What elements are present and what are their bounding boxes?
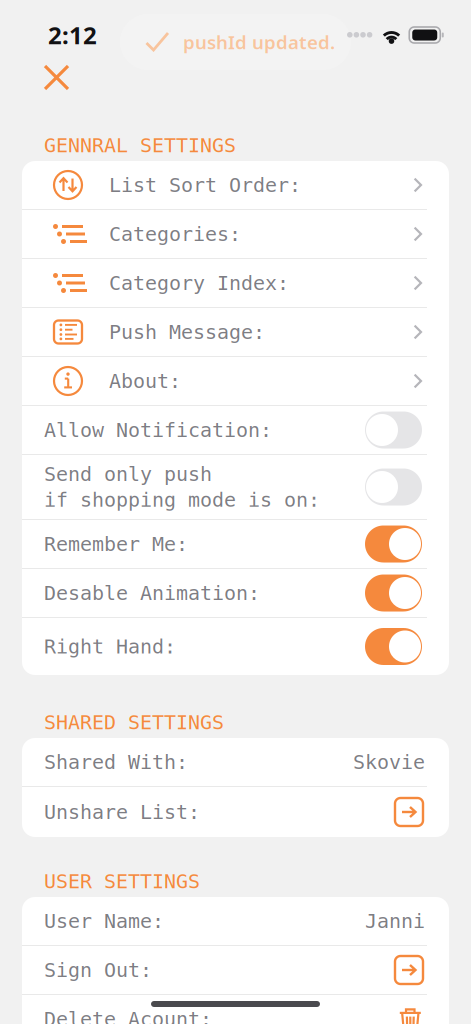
staticText: Allow Notification: [44, 419, 272, 441]
button[interactable]: Disabled [365, 411, 422, 448]
staticText: User Name: [44, 910, 164, 932]
staticText: List Sort Order: [109, 174, 301, 196]
staticText: Delete Acount: [44, 1008, 212, 1024]
staticText: Push Message: [109, 321, 265, 343]
staticText: About: [109, 370, 181, 392]
button[interactable]: Enabled [365, 525, 422, 562]
staticText: Janni [365, 910, 425, 932]
button[interactable]: List Sort Order: [22, 161, 449, 209]
staticText: Skovie [353, 751, 425, 773]
staticText: Shared With: [44, 751, 188, 773]
staticText: Categories: [109, 223, 241, 245]
staticText: Remember Me: [44, 533, 188, 555]
button[interactable]: Push Message: [22, 308, 449, 356]
staticText: Sign Out: [44, 959, 152, 981]
staticText: Right Hand: [44, 635, 176, 658]
button[interactable]: Disabled [365, 468, 422, 505]
staticText: GENNRAL SETTINGS [44, 134, 236, 157]
button[interactable]: Unshare List: [22, 787, 449, 837]
button[interactable]: Sign Out: [22, 946, 449, 994]
staticText: 2:12 [48, 19, 97, 51]
staticText: if shopping mode is on: [44, 488, 320, 511]
button[interactable]: Category Index: [22, 259, 449, 307]
button[interactable]: Enabled [365, 628, 422, 665]
button[interactable]: Close [34, 55, 79, 100]
staticText: Desable Animation: [44, 582, 260, 604]
staticText: Unshare List: [44, 801, 200, 823]
button[interactable]: Delete Acount: [22, 995, 449, 1024]
button[interactable]: Categories: [22, 210, 449, 258]
staticText: pushId updated. [183, 30, 335, 54]
staticText: SHARED SETTINGS [44, 711, 224, 734]
staticText: Category Index: [109, 272, 289, 294]
button[interactable]: About: [22, 357, 449, 405]
staticText: Send only push [44, 463, 212, 485]
staticText: USER SETTINGS [44, 870, 200, 893]
button[interactable]: Enabled [365, 574, 422, 611]
